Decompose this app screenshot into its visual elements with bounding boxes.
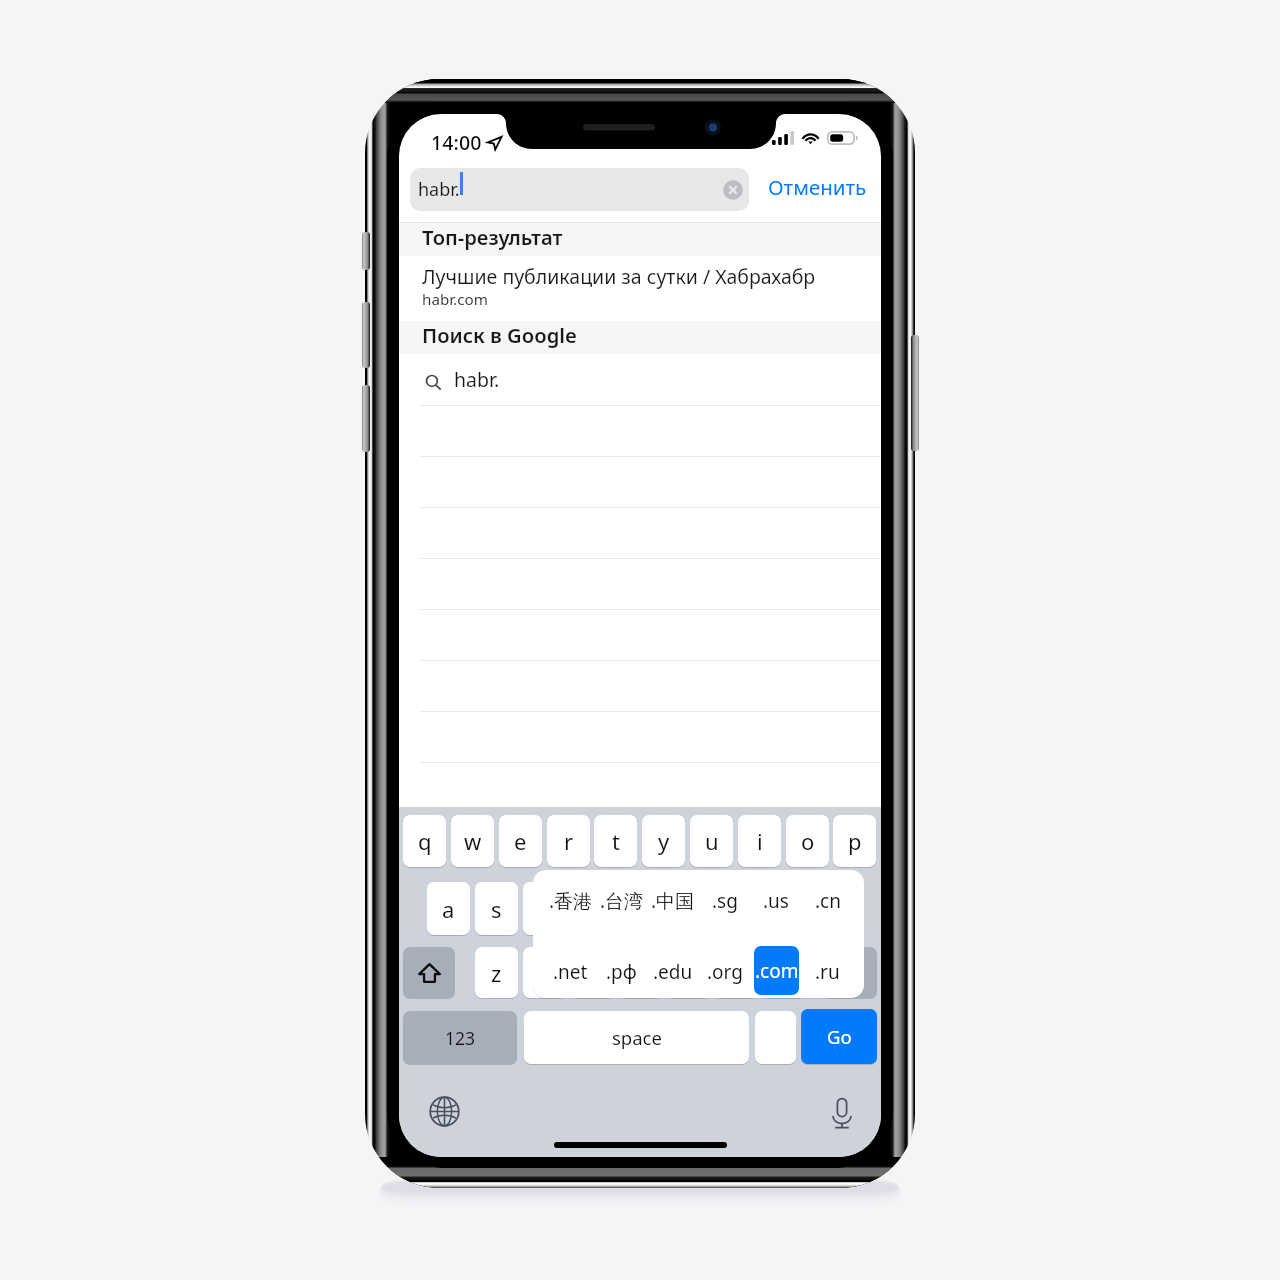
- button[interactable]: j: [714, 882, 757, 935]
- button[interactable]: .cn: [802, 879, 853, 923]
- staticText: a: [442, 894, 455, 924]
- staticText: 123: [445, 1026, 476, 1050]
- button[interactable]: .中国: [647, 879, 698, 923]
- button[interactable]: h: [666, 882, 709, 935]
- staticText: .com: [755, 958, 799, 984]
- staticText: .рф: [606, 959, 637, 985]
- button[interactable]: Clear text: [723, 180, 743, 200]
- button[interactable]: u: [690, 815, 733, 867]
- button[interactable]: .台湾: [596, 879, 647, 923]
- button[interactable]: l: [809, 882, 852, 935]
- staticText: q: [418, 826, 432, 856]
- staticText: g: [633, 894, 647, 924]
- staticText: .net: [553, 959, 588, 985]
- button[interactable]: space: [524, 1011, 749, 1064]
- staticText: f: [588, 894, 596, 924]
- button[interactable]: y: [642, 815, 685, 867]
- staticText: Лучшие публикации за сутки / Хабрахабр: [422, 263, 816, 290]
- staticText: p: [848, 826, 862, 856]
- button[interactable]: [755, 1011, 796, 1064]
- staticText: .中国: [651, 888, 695, 914]
- staticText: o: [801, 826, 815, 856]
- button[interactable]: Лучшие публикации за сутки / Хабрахабр: [399, 256, 881, 321]
- staticText: habr.com: [422, 289, 488, 310]
- staticText: e: [514, 826, 527, 856]
- staticText: r: [564, 826, 574, 856]
- staticText: .sg: [712, 888, 738, 914]
- button[interactable]: s: [475, 882, 518, 935]
- staticText: .香港: [549, 888, 593, 914]
- button[interactable]: o: [786, 815, 829, 867]
- staticText: .cn: [815, 888, 841, 914]
- staticText: space: [612, 1025, 662, 1050]
- staticText: v: [635, 958, 647, 988]
- button[interactable]: 123: [403, 1011, 517, 1064]
- button[interactable]: Shift: [403, 947, 455, 998]
- button[interactable]: x: [523, 947, 566, 998]
- staticText: 14:00: [431, 129, 482, 156]
- button[interactable]: Go: [801, 1009, 877, 1064]
- staticText: Go: [827, 1024, 852, 1049]
- button[interactable]: e: [499, 815, 542, 867]
- button[interactable]: .org: [699, 950, 750, 994]
- button[interactable]: habr.: [399, 354, 881, 405]
- staticText: habr.: [418, 177, 460, 202]
- button[interactable]: i: [738, 815, 781, 867]
- button[interactable]: r: [547, 815, 590, 867]
- staticText: .org: [707, 959, 743, 985]
- staticText: i: [757, 826, 763, 856]
- button[interactable]: d: [523, 882, 566, 935]
- button[interactable]: t: [594, 815, 637, 867]
- button[interactable]: a: [427, 882, 470, 935]
- staticText: k: [778, 894, 790, 924]
- button[interactable]: Dictation: [824, 1095, 860, 1131]
- button[interactable]: .com: [754, 946, 799, 995]
- staticText: .台湾: [600, 888, 644, 914]
- staticText: Топ-результат: [422, 223, 563, 251]
- button[interactable]: .ru: [802, 950, 853, 994]
- staticText: Поиск в Google: [422, 321, 577, 349]
- staticText: u: [705, 826, 719, 856]
- staticText: m: [773, 958, 794, 988]
- button[interactable]: c: [571, 947, 614, 998]
- staticText: t: [612, 826, 620, 856]
- staticText: .ru: [815, 959, 840, 985]
- staticText: w: [464, 826, 482, 856]
- button[interactable]: p: [833, 815, 876, 867]
- staticText: b: [682, 958, 696, 988]
- button[interactable]: .рф: [596, 950, 647, 994]
- button[interactable]: f: [570, 882, 613, 935]
- staticText: .us: [763, 888, 789, 914]
- staticText: n: [729, 958, 743, 988]
- button[interactable]: .edu: [647, 950, 698, 994]
- button[interactable]: g: [618, 882, 661, 935]
- staticText: Отменить: [768, 173, 867, 201]
- button[interactable]: w: [451, 815, 494, 867]
- staticText: j: [733, 894, 739, 924]
- staticText: d: [538, 894, 552, 924]
- button[interactable]: Backspace: [823, 947, 877, 998]
- button[interactable]: .香港: [545, 879, 596, 923]
- button[interactable]: k: [762, 882, 805, 935]
- staticText: y: [658, 826, 670, 856]
- button[interactable]: q: [403, 815, 446, 867]
- button[interactable]: Отменить: [756, 166, 878, 218]
- button[interactable]: .us: [750, 879, 801, 923]
- staticText: .edu: [653, 959, 693, 985]
- button[interactable]: v: [619, 947, 662, 998]
- staticText: z: [491, 958, 502, 988]
- staticText: habr.: [454, 366, 500, 393]
- button[interactable]: m: [762, 947, 805, 998]
- button[interactable]: n: [714, 947, 757, 998]
- staticText: l: [828, 894, 834, 924]
- button[interactable]: Switch keyboard language: [426, 1093, 462, 1129]
- button[interactable]: .net: [545, 950, 596, 994]
- button[interactable]: habr.: [410, 168, 749, 211]
- staticText: h: [681, 894, 695, 924]
- button[interactable]: z: [475, 947, 518, 998]
- staticText: s: [491, 894, 502, 924]
- button[interactable]: .sg: [699, 879, 750, 923]
- button[interactable]: b: [667, 947, 710, 998]
